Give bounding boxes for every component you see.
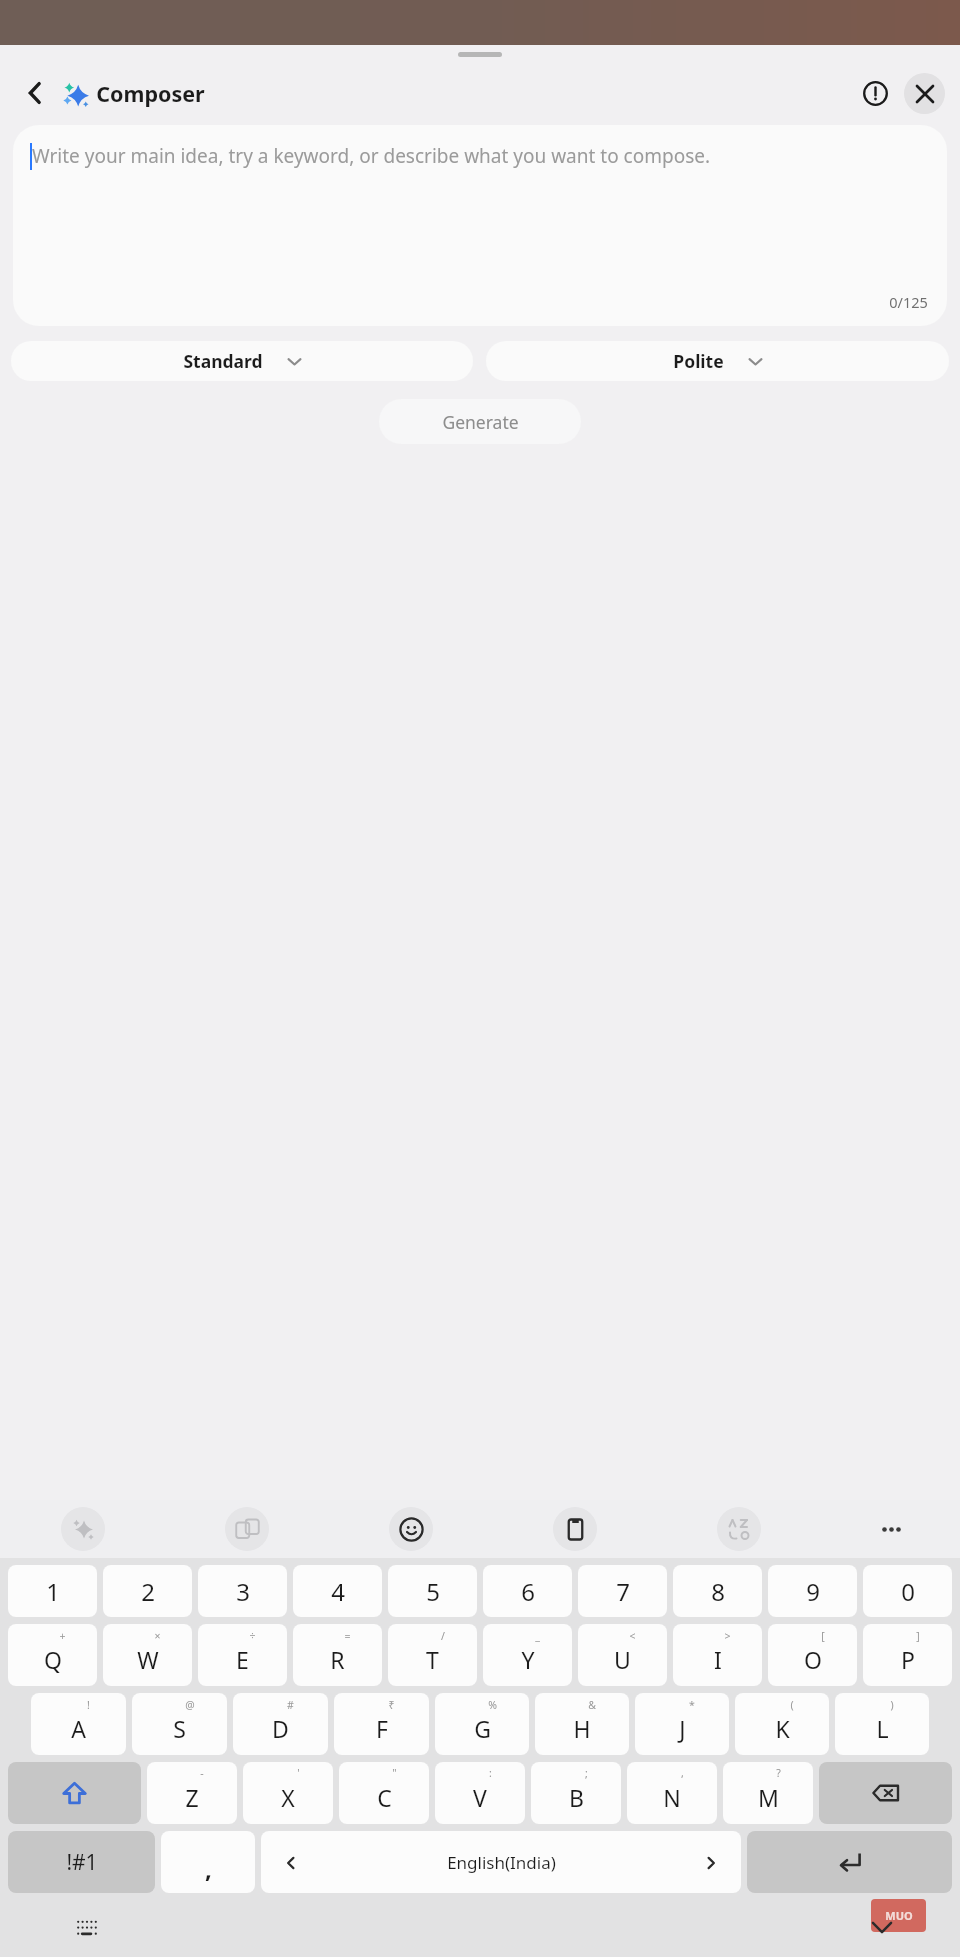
button[interactable]: " [339,1762,429,1824]
staticText: MUO [885,1908,913,1923]
button[interactable]: > [673,1624,762,1686]
button[interactable]: Space [261,1831,741,1893]
staticText: , [205,1852,212,1885]
button[interactable]: - [147,1762,237,1824]
button[interactable]: 4 [293,1565,382,1617]
staticText: * [689,1698,695,1712]
button[interactable]: _ [483,1624,572,1686]
button[interactable]: 9 [768,1565,857,1617]
button[interactable]: ? [723,1762,813,1824]
staticText: Write your main idea, try a keyword, or … [32,143,711,169]
button[interactable]: 0 [863,1565,952,1617]
staticText: Polite [673,349,724,373]
staticText: " [392,1766,397,1780]
staticText: Y [521,1644,535,1675]
button[interactable]: 1 [8,1565,97,1617]
button[interactable]: Text tools [717,1507,761,1551]
button[interactable]: , [627,1762,717,1824]
staticText: Generate [442,410,519,434]
button[interactable]: 2 [103,1565,192,1617]
staticText: 5 [426,1575,440,1608]
staticText: ] [916,1629,920,1643]
button[interactable]: * [635,1693,729,1755]
button[interactable]: ! [31,1693,126,1755]
staticText: D [272,1713,289,1744]
staticText: 8 [711,1575,725,1608]
button[interactable]: Generate [379,399,581,444]
staticText: F [376,1713,388,1744]
button[interactable]: Shift [8,1762,141,1824]
staticText: G [474,1713,491,1744]
staticText: : [489,1766,492,1780]
button[interactable]: Back [12,70,58,116]
staticText: = [344,1629,351,1643]
button[interactable]: & [535,1693,629,1755]
staticText: ) [890,1698,894,1712]
staticText: T [426,1644,439,1675]
staticText: E [236,1644,249,1675]
staticText: / [441,1629,445,1643]
staticText: 7 [616,1575,630,1608]
button[interactable]: More options [869,1507,913,1551]
button[interactable]: Translate [225,1507,269,1551]
button[interactable]: % [435,1693,529,1755]
button[interactable]: / [388,1624,477,1686]
button[interactable]: + [8,1624,97,1686]
staticText: M [758,1782,779,1813]
button[interactable]: Close [904,73,945,114]
button[interactable]: Information [853,71,897,115]
staticText: ' [297,1766,300,1780]
button[interactable]: 6 [483,1565,572,1617]
button[interactable]: < [578,1624,667,1686]
button[interactable]: !#1 [8,1831,155,1893]
button[interactable]: ] [863,1624,952,1686]
staticText: O [804,1644,822,1675]
staticText: + [59,1629,66,1643]
staticText: A [71,1713,86,1744]
button[interactable]: AI compose [61,1507,105,1551]
staticText: C [377,1782,392,1813]
button[interactable]: @ [132,1693,227,1755]
button[interactable]: ₹ [334,1693,429,1755]
button[interactable]: , [161,1831,255,1893]
staticText: 4 [331,1575,345,1608]
button[interactable]: Standard [11,341,473,381]
button[interactable]: [ [768,1624,857,1686]
button[interactable]: Clipboard [553,1507,597,1551]
staticText: Standard [183,349,263,373]
button[interactable]: Enter [747,1831,952,1893]
button[interactable]: 8 [673,1565,762,1617]
staticText: 2 [141,1575,155,1608]
button[interactable]: ÷ [198,1624,287,1686]
staticText: K [775,1713,790,1744]
staticText: # [287,1698,294,1712]
staticText: 9 [806,1575,820,1608]
staticText: ₹ [388,1698,395,1712]
button[interactable]: # [233,1693,328,1755]
button[interactable]: ' [243,1762,333,1824]
button[interactable]: = [293,1624,382,1686]
button[interactable]: 3 [198,1565,287,1617]
staticText: Composer [96,79,205,108]
staticText: W [137,1644,159,1675]
staticText: P [901,1644,915,1675]
button[interactable]: ) [835,1693,929,1755]
staticText: ÷ [249,1629,256,1643]
button[interactable]: ; [531,1762,621,1824]
staticText: N [663,1782,681,1813]
staticText: - [200,1766,204,1780]
staticText: J [679,1713,686,1744]
button[interactable]: × [103,1624,192,1686]
staticText: _ [535,1629,540,1643]
button[interactable]: : [435,1762,525,1824]
button[interactable]: Keyboard layout [70,1911,104,1945]
button[interactable]: 7 [578,1565,667,1617]
button[interactable]: Polite [486,341,949,381]
button[interactable]: 5 [388,1565,477,1617]
staticText: 0/125 [889,292,928,312]
button[interactable]: ( [735,1693,829,1755]
button[interactable]: Emoji [389,1507,433,1551]
button[interactable]: Backspace [819,1762,952,1824]
button[interactable]: Write your main idea, try a keyword, or … [13,125,947,326]
button[interactable]: Hide keyboard [862,1907,902,1947]
